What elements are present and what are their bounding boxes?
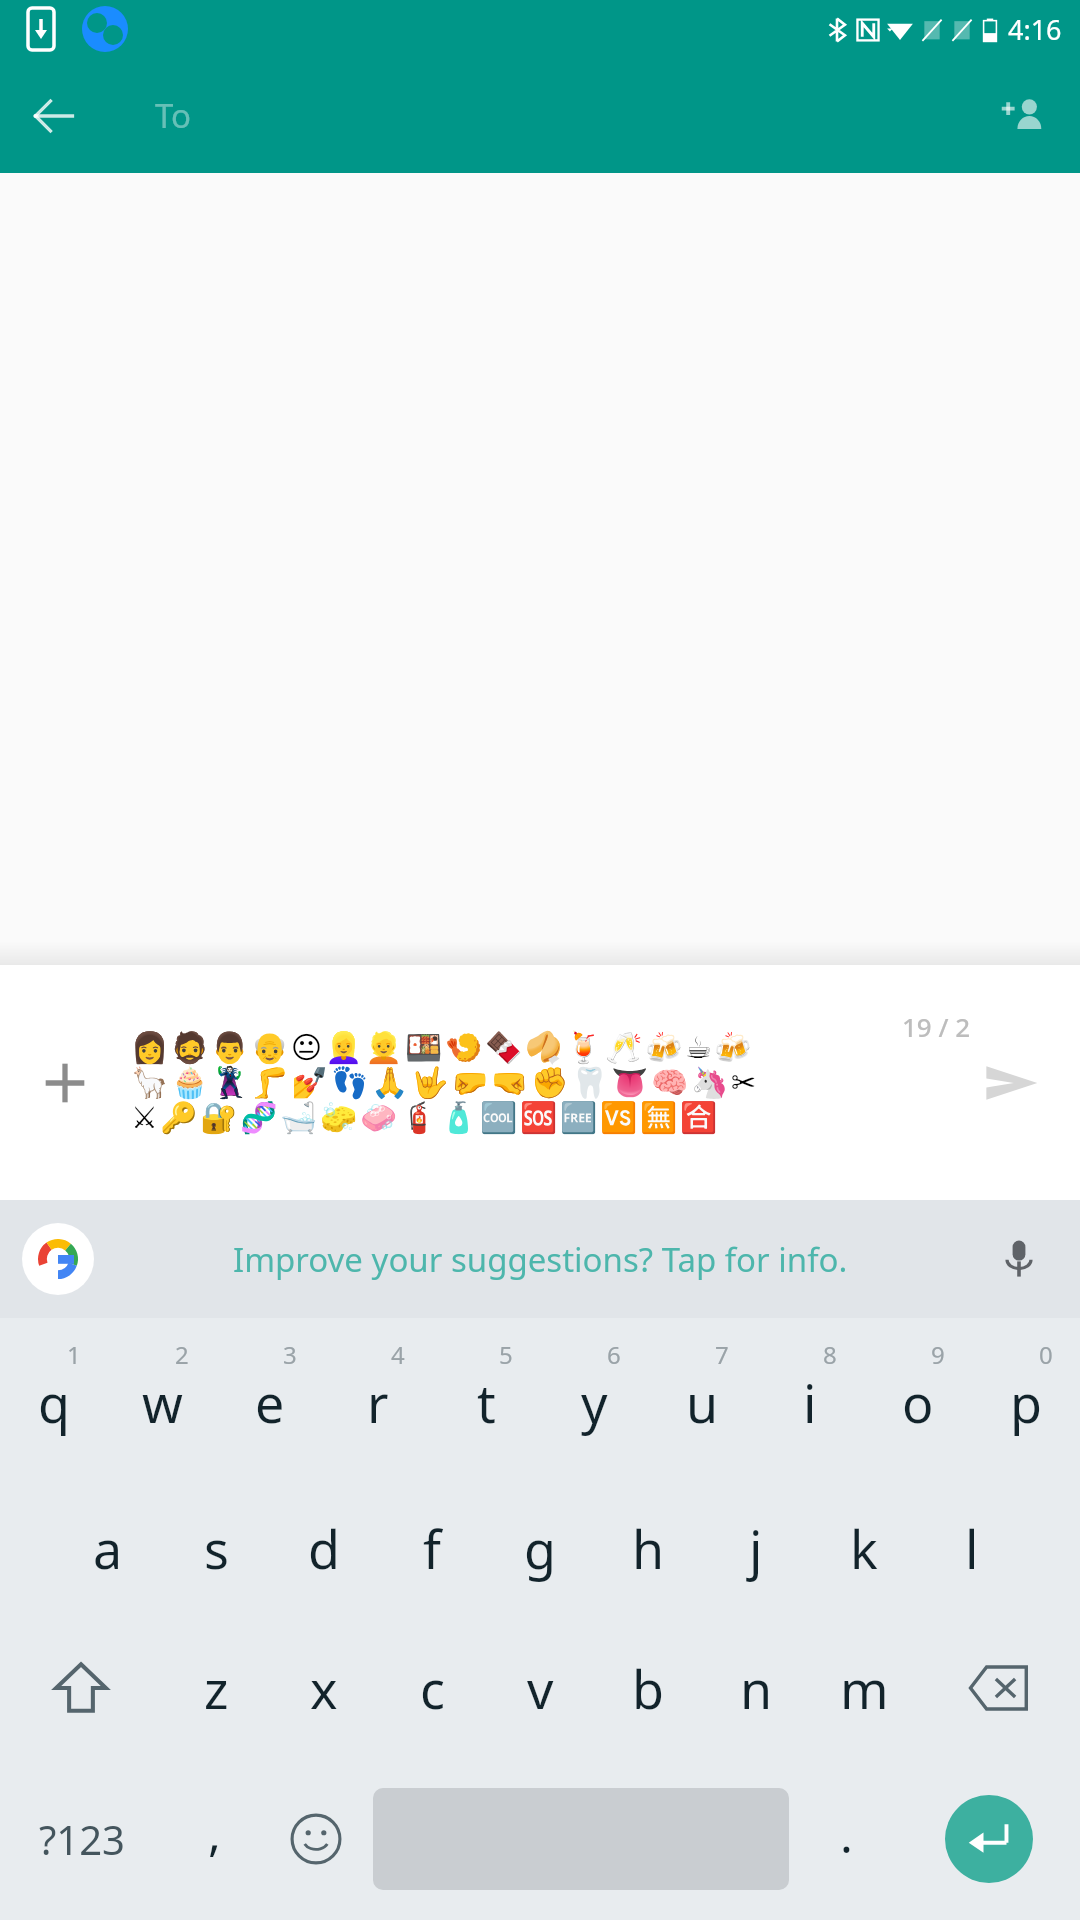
staticText: y — [581, 1367, 608, 1438]
staticText: 5 — [499, 1338, 513, 1371]
button[interactable]: c — [378, 1618, 486, 1758]
staticText: 🔑 — [160, 1100, 198, 1135]
staticText: 🧯 — [400, 1100, 438, 1135]
staticText: 🆒 — [480, 1100, 518, 1135]
button[interactable]: n — [702, 1618, 810, 1758]
staticText: q — [38, 1367, 70, 1438]
button[interactable]: Improve your suggestions? Tap for info. — [0, 1200, 1080, 1318]
button[interactable]: 4 — [324, 1318, 432, 1478]
staticText: i — [803, 1367, 817, 1438]
staticText: 🆓 — [560, 1100, 598, 1135]
staticText: z — [204, 1653, 229, 1724]
button[interactable]: s — [162, 1478, 270, 1618]
staticText: 8 — [823, 1338, 837, 1371]
staticText: ✂️ — [731, 1065, 757, 1100]
button[interactable]: Emoji — [265, 1758, 367, 1920]
staticText: ⚔️ — [131, 1100, 158, 1135]
button[interactable]: v — [486, 1618, 594, 1758]
button[interactable]: Voice input — [984, 1224, 1054, 1294]
staticText: ?123 — [39, 1812, 125, 1866]
staticText: 🧠 — [651, 1065, 689, 1100]
button[interactable]: g — [486, 1478, 594, 1618]
button[interactable]: m — [810, 1618, 918, 1758]
button[interactable]: Back — [18, 80, 90, 152]
button[interactable]: 5 — [432, 1318, 540, 1478]
staticText: 🥠 — [525, 1030, 563, 1065]
staticText: ☕ — [685, 1030, 712, 1065]
staticText: 19 / 2 — [902, 1009, 971, 1044]
staticText: 🔐 — [200, 1100, 238, 1135]
button[interactable]: Backspace — [918, 1618, 1080, 1758]
staticText: 6 — [607, 1338, 621, 1371]
button[interactable]: a — [54, 1478, 162, 1618]
staticText: 💅 — [291, 1065, 329, 1100]
button[interactable]: j — [702, 1478, 810, 1618]
button[interactable]: f — [378, 1478, 486, 1618]
staticText: r — [367, 1367, 389, 1438]
button[interactable]: Attach — [0, 965, 130, 1200]
staticText: , — [208, 1800, 221, 1865]
button[interactable]: 9 — [864, 1318, 972, 1478]
staticText: a — [93, 1513, 123, 1584]
staticText: 🤟 — [411, 1065, 449, 1100]
staticText: 🍻 — [645, 1030, 683, 1065]
button[interactable]: h — [594, 1478, 702, 1618]
staticText: 3 — [283, 1338, 297, 1371]
staticText: u — [686, 1367, 719, 1438]
staticText: 9 — [931, 1338, 945, 1371]
staticText: . — [840, 1802, 853, 1867]
staticText: 🦵 — [251, 1065, 289, 1100]
staticText: 🍻 — [714, 1030, 752, 1065]
button[interactable]: 2 — [108, 1318, 216, 1478]
button[interactable]: , — [163, 1758, 265, 1920]
staticText: h — [632, 1513, 665, 1584]
staticText: v — [527, 1653, 554, 1724]
staticText: 🈴 — [680, 1100, 718, 1135]
button[interactable]: . — [795, 1758, 897, 1920]
staticText: 🍫 — [485, 1030, 523, 1065]
staticText: To — [155, 93, 192, 138]
staticText: 🧽 — [320, 1100, 358, 1135]
staticText: s — [204, 1513, 229, 1584]
staticText: 🧼 — [360, 1100, 398, 1135]
staticText: 👣 — [331, 1065, 369, 1100]
button[interactable]: x — [270, 1618, 378, 1758]
staticText: 🧴 — [440, 1100, 478, 1135]
staticText: 🦙 — [131, 1065, 169, 1100]
button[interactable]: 3 — [216, 1318, 324, 1478]
staticText: 🤛 — [451, 1065, 489, 1100]
button[interactable]: l — [918, 1478, 1026, 1618]
staticText: 🤜 — [491, 1065, 529, 1100]
button[interactable]: 7 — [648, 1318, 756, 1478]
button[interactable]: Shift — [0, 1618, 162, 1758]
staticText: 👩 — [131, 1030, 169, 1065]
staticText: 👴 — [251, 1030, 289, 1065]
staticText: 👱 — [365, 1030, 403, 1065]
staticText: n — [740, 1653, 773, 1724]
staticText: l — [965, 1513, 979, 1584]
staticText: 0 — [1039, 1338, 1053, 1371]
staticText: 1 — [67, 1338, 81, 1371]
staticText: g — [524, 1513, 556, 1584]
button[interactable]: 8 — [756, 1318, 864, 1478]
button[interactable]: 6 — [540, 1318, 648, 1478]
staticText: 🦄 — [691, 1065, 729, 1100]
button[interactable]: d — [270, 1478, 378, 1618]
button[interactable]: z — [162, 1618, 270, 1758]
button[interactable]: b — [594, 1618, 702, 1758]
staticText: 🧔 — [171, 1030, 209, 1065]
staticText: 🆘 — [520, 1100, 558, 1135]
button[interactable]: 1 — [0, 1318, 108, 1478]
button[interactable]: Enter — [945, 1795, 1033, 1883]
button[interactable]: k — [810, 1478, 918, 1618]
button[interactable]: 0 — [972, 1318, 1080, 1478]
staticText: 7 — [715, 1338, 729, 1371]
staticText: 🙏 — [371, 1065, 409, 1100]
staticText: o — [902, 1367, 934, 1438]
staticText: 🥂 — [605, 1030, 643, 1065]
staticText: 😐 — [291, 1030, 323, 1065]
button[interactable]: ?123 — [0, 1758, 163, 1920]
button[interactable]: Send — [968, 1040, 1054, 1126]
button[interactable]: Add contact — [984, 78, 1060, 154]
